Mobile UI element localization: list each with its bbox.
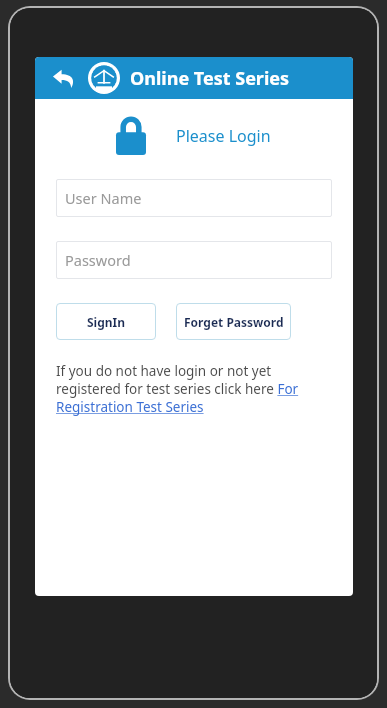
staticText: Password: [65, 250, 131, 270]
button[interactable]: SignIn: [56, 303, 156, 340]
staticText: User Name: [65, 188, 142, 208]
button[interactable]: Forget Password: [176, 303, 291, 340]
staticText: Forget Password: [184, 314, 284, 330]
staticText: Online Test Series: [130, 66, 290, 91]
button[interactable]: User Name: [56, 179, 332, 217]
staticText: Please Login: [176, 125, 271, 147]
button[interactable]: If you do not have login or not yet regi…: [56, 362, 332, 416]
button[interactable]: Password: [56, 241, 332, 279]
button[interactable]: Back: [49, 63, 79, 93]
staticText: SignIn: [87, 314, 126, 330]
